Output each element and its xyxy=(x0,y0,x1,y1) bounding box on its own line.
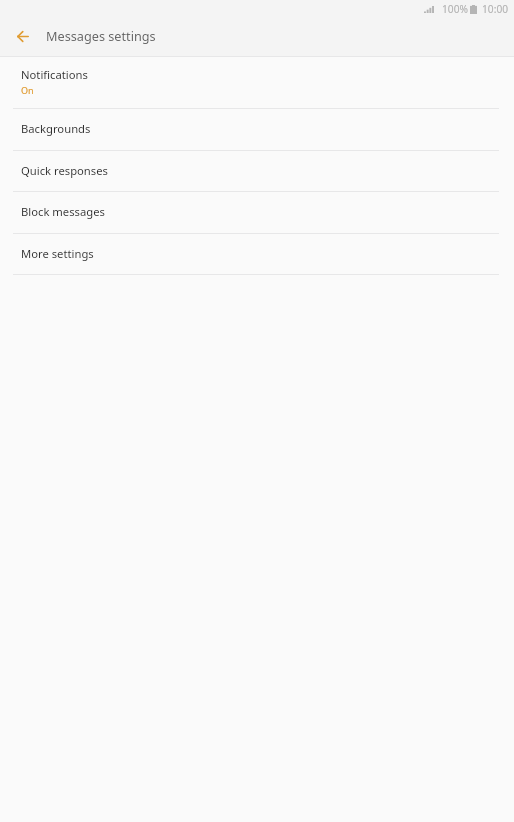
button[interactable]: More settings xyxy=(0,234,514,274)
staticText: Backgrounds xyxy=(21,121,91,136)
button[interactable]: Backgrounds xyxy=(0,109,514,150)
button[interactable]: Notifications xyxy=(0,57,514,108)
button[interactable]: Block messages xyxy=(0,192,514,233)
staticText: 10:00 xyxy=(482,2,509,16)
button[interactable]: Navigate up xyxy=(0,18,46,56)
staticText: Notifications xyxy=(21,67,88,82)
staticText: Messages settings xyxy=(46,27,156,44)
button[interactable]: Quick responses xyxy=(0,151,514,191)
staticText: 100% xyxy=(442,2,468,16)
staticText: Block messages xyxy=(21,204,105,219)
staticText: On xyxy=(21,84,34,96)
staticText: More settings xyxy=(21,246,94,261)
staticText: Quick responses xyxy=(21,163,108,178)
